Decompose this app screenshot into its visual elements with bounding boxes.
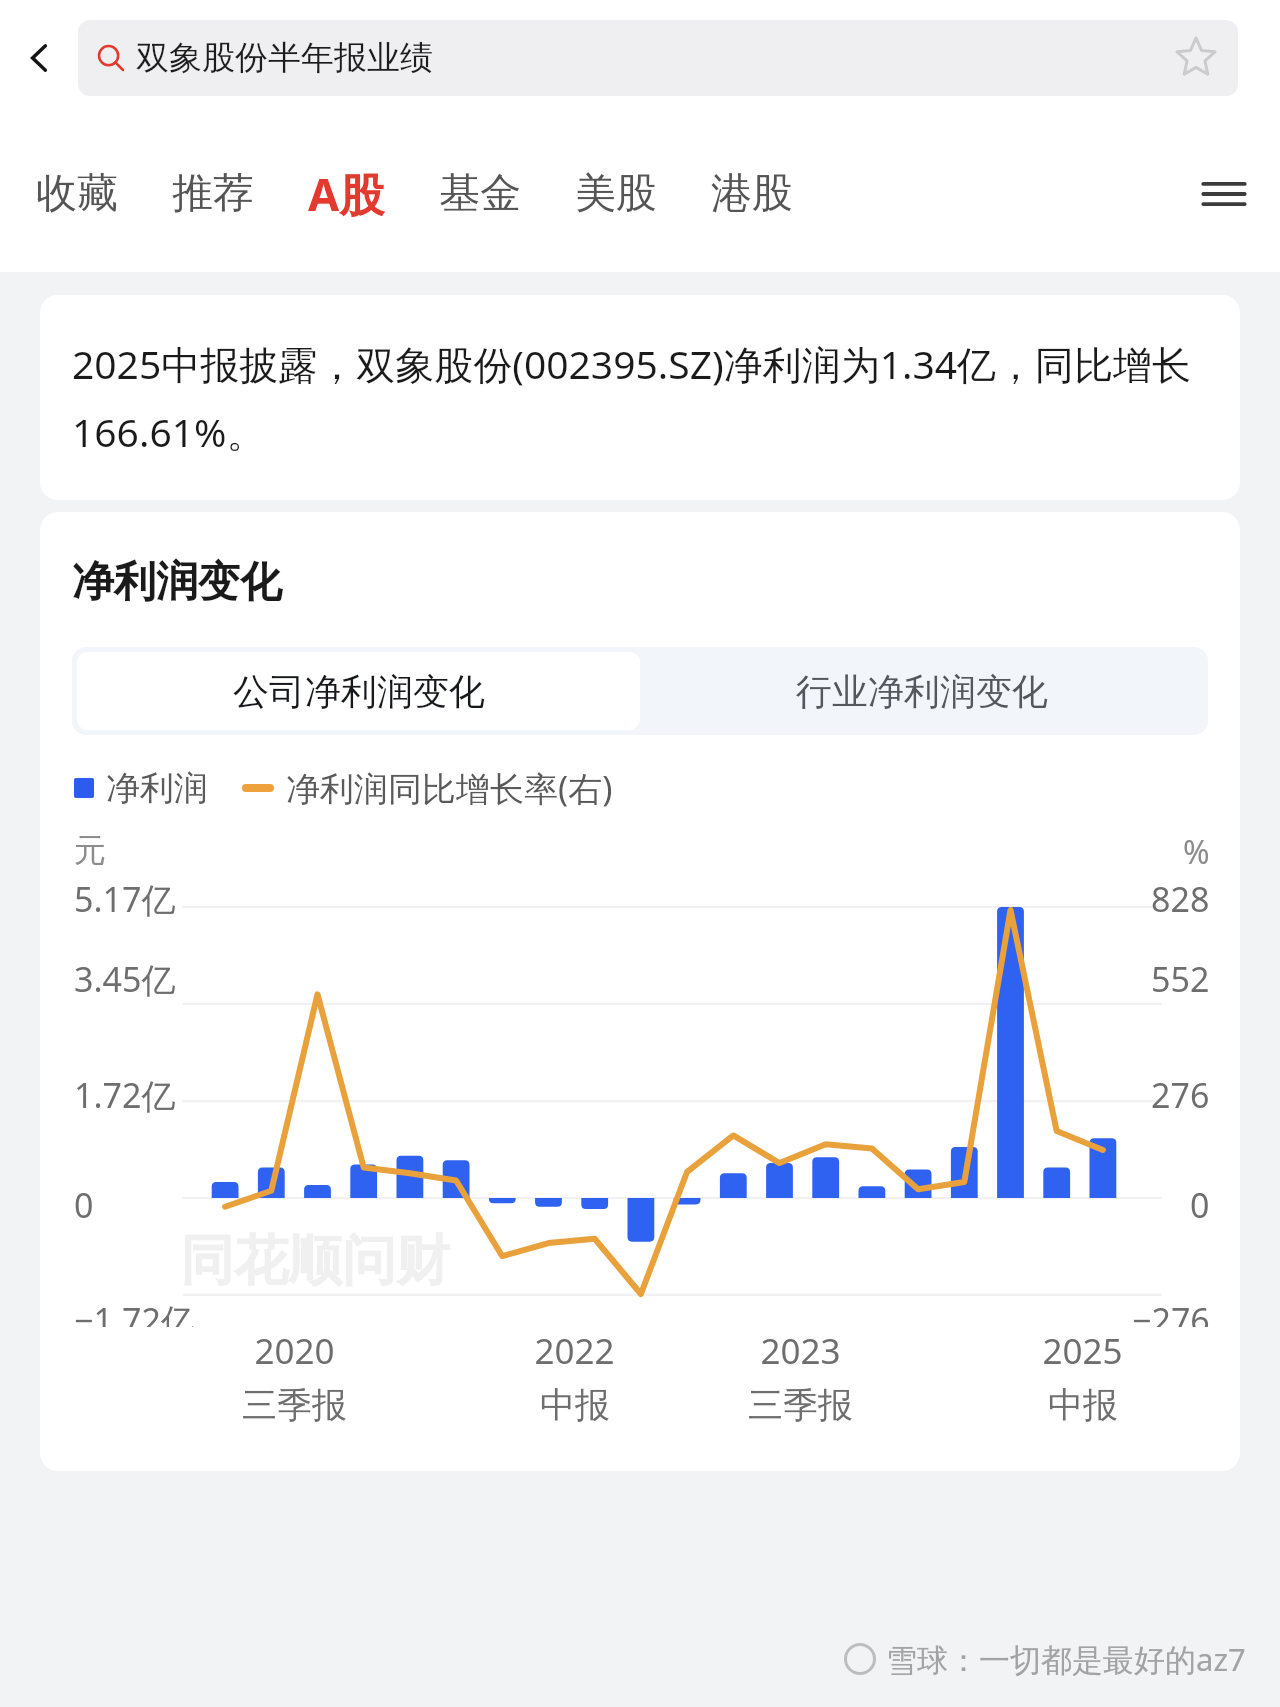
staticText: A股: [308, 163, 385, 224]
staticText: 港股: [711, 168, 793, 220]
staticText: 净利润同比增长率(右): [286, 765, 613, 811]
staticText: 同花顺问财: [180, 1227, 450, 1295]
staticText: 2025: [1042, 1327, 1123, 1375]
staticText: −276: [1132, 1297, 1210, 1327]
staticText: 2023: [760, 1327, 841, 1375]
staticText: 276: [1151, 1072, 1210, 1118]
button[interactable]: 2025中报披露，双象股份(002395.SZ)净利润为1.34亿，同比增长16…: [40, 295, 1240, 500]
staticText: 三季报: [242, 1383, 347, 1427]
staticText: 0: [1190, 1182, 1210, 1228]
staticText: 基金: [439, 168, 521, 220]
staticText: 中报: [540, 1383, 610, 1427]
button[interactable]: 收藏: [34, 152, 120, 236]
staticText: 2020: [254, 1327, 335, 1375]
staticText: 5.17亿: [74, 876, 176, 922]
staticText: 净利润变化: [72, 556, 282, 609]
button[interactable]: 行业净利润变化: [640, 652, 1203, 730]
staticText: 收藏: [36, 168, 118, 220]
staticText: 0: [74, 1182, 94, 1228]
staticText: 净利润: [106, 767, 208, 810]
staticText: 雪球：一切都是最好的az7: [886, 1638, 1246, 1680]
button[interactable]: 美股: [573, 152, 659, 236]
staticText: 2025中报披露，双象股份(002395.SZ)净利润为1.34亿，同比增长16…: [72, 337, 1208, 458]
button[interactable]: 公司净利润变化: [77, 652, 640, 730]
staticText: 元: [74, 830, 106, 870]
staticText: 828: [1151, 876, 1210, 922]
button[interactable]: Favorite: [1158, 20, 1234, 96]
button[interactable]: Menu: [1176, 149, 1272, 239]
staticText: 中报: [1048, 1383, 1118, 1427]
staticText: 三季报: [748, 1383, 853, 1427]
button[interactable]: Back: [0, 0, 78, 115]
staticText: −1.72亿: [74, 1297, 195, 1327]
button[interactable]: 推荐: [170, 152, 256, 236]
staticText: %: [1183, 830, 1210, 874]
staticText: 552: [1151, 956, 1210, 1002]
staticText: 3.45亿: [74, 956, 176, 1002]
button[interactable]: 双象股份半年报业绩: [78, 20, 1238, 96]
staticText: 推荐: [172, 168, 254, 220]
button[interactable]: 基金: [437, 152, 523, 236]
staticText: 2022: [534, 1327, 615, 1375]
button[interactable]: A股: [306, 147, 387, 240]
staticText: 行业净利润变化: [796, 669, 1048, 714]
staticText: 1.72亿: [74, 1072, 176, 1118]
button[interactable]: 港股: [709, 152, 795, 236]
staticText: 美股: [575, 168, 657, 220]
staticText: 双象股份半年报业绩: [136, 37, 433, 79]
staticText: 公司净利润变化: [233, 669, 485, 714]
